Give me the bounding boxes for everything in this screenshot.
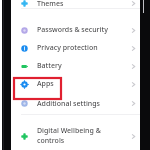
button[interactable]: Apps [11,75,140,93]
staticText: Digital Wellbeing & parental [37,126,129,136]
button[interactable]: Battery [11,57,140,75]
staticText: Themes [37,0,64,7]
staticText: Additional settings [37,99,100,109]
staticText: Privacy protection [37,43,98,53]
button[interactable]: Additional settings [11,93,140,114]
button[interactable]: Passwords & security [11,21,140,39]
staticText: Battery [37,61,62,71]
staticText: Apps [37,79,54,89]
button[interactable]: Themes [11,0,140,8]
staticText: controls [37,136,65,146]
button[interactable]: Digital Wellbeing & parental [11,126,140,146]
staticText: Passwords & security [37,25,108,35]
button[interactable]: Privacy protection [11,39,140,57]
